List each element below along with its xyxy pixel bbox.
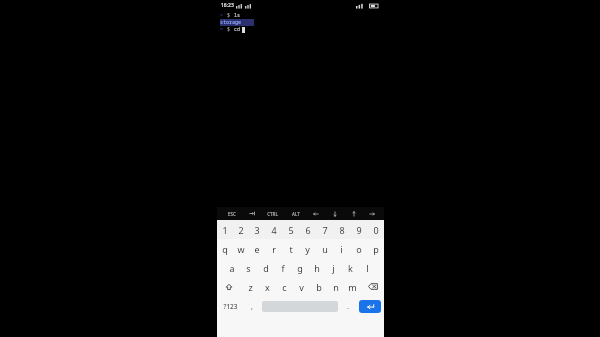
button[interactable]: f — [274, 258, 291, 277]
button[interactable]: Arrow right — [365, 207, 378, 220]
staticText: 5 — [288, 224, 294, 236]
staticText: i — [340, 243, 343, 255]
button[interactable]: CTRL — [264, 207, 281, 220]
button[interactable]: c — [276, 277, 293, 296]
button[interactable]: 3 — [249, 220, 265, 239]
staticText: ~ — [220, 26, 224, 33]
button[interactable]: . — [340, 296, 356, 317]
staticText: z — [248, 281, 253, 293]
staticText: 0 — [373, 224, 379, 236]
button[interactable]: 6 — [299, 220, 316, 239]
button[interactable]: 7 — [316, 220, 333, 239]
staticText: s — [246, 262, 251, 274]
staticText: ESC — [228, 211, 236, 217]
button[interactable]: n — [327, 277, 344, 296]
staticText: v — [299, 281, 304, 293]
staticText: e — [254, 243, 260, 255]
staticText: 1 — [222, 224, 228, 236]
staticText: l — [366, 262, 369, 274]
staticText: x — [265, 281, 270, 293]
staticText: 8 — [339, 224, 345, 236]
button[interactable]: Arrow left — [309, 207, 322, 220]
staticText: d — [263, 262, 269, 274]
button[interactable]: Backspace — [361, 277, 384, 296]
staticText: h — [314, 262, 320, 274]
staticText: 4 — [271, 224, 277, 236]
button[interactable]: b — [310, 277, 327, 296]
button[interactable]: r — [265, 239, 282, 258]
staticText: k — [348, 262, 353, 274]
staticText: 2 — [238, 224, 244, 236]
staticText: g — [297, 262, 303, 274]
button[interactable]: k — [342, 258, 359, 277]
button[interactable]: s — [240, 258, 257, 277]
staticText: n — [333, 281, 339, 293]
staticText: ?123 — [223, 302, 238, 311]
button[interactable]: z — [241, 277, 259, 296]
staticText: u — [322, 243, 328, 255]
button[interactable]: d — [257, 258, 274, 277]
button[interactable]: 5 — [282, 220, 299, 239]
staticText: , — [251, 302, 253, 312]
button[interactable]: ESC — [223, 207, 240, 220]
button[interactable]: ?123 — [217, 296, 244, 317]
button[interactable]: h — [308, 258, 325, 277]
button[interactable]: Shift — [217, 277, 241, 296]
button[interactable]: 2 — [233, 220, 249, 239]
staticText: a — [229, 262, 235, 274]
staticText: 16:23 — [221, 2, 234, 9]
staticText: w — [237, 243, 245, 255]
staticText: q — [222, 243, 228, 255]
staticText: CTRL — [267, 211, 278, 217]
button[interactable]: i — [333, 239, 350, 258]
button[interactable]: 9 — [350, 220, 367, 239]
staticText: j — [332, 262, 335, 274]
button[interactable]: e — [249, 239, 265, 258]
staticText: t — [289, 243, 293, 255]
button[interactable]: p — [367, 239, 384, 258]
button[interactable]: ~ — [217, 11, 384, 207]
button[interactable]: Arrow down — [328, 207, 341, 220]
button[interactable]: , — [244, 296, 260, 317]
button[interactable]: l — [359, 258, 376, 277]
button[interactable]: Arrow up — [347, 207, 360, 220]
staticText: o — [356, 243, 362, 255]
button[interactable]: t — [282, 239, 299, 258]
staticText: 3 — [254, 224, 260, 236]
staticText: 7 — [322, 224, 328, 236]
staticText: ~ — [220, 12, 224, 19]
staticText: $ — [224, 12, 234, 19]
staticText: $ — [224, 26, 234, 33]
staticText: ALT — [292, 211, 300, 217]
button[interactable]: 8 — [333, 220, 350, 239]
button[interactable]: j — [325, 258, 342, 277]
staticText: f — [281, 262, 285, 274]
button[interactable]: m — [344, 277, 361, 296]
staticText: b — [316, 281, 322, 293]
staticText: m — [348, 281, 357, 293]
staticText: . — [347, 302, 349, 312]
button[interactable]: u — [316, 239, 333, 258]
button[interactable]: x — [259, 277, 276, 296]
button[interactable]: 1 — [217, 220, 233, 239]
button[interactable]: Enter — [359, 300, 381, 313]
button[interactable]: y — [299, 239, 316, 258]
button[interactable]: q — [217, 239, 233, 258]
staticText: storage — [220, 19, 242, 26]
button[interactable]: 4 — [265, 220, 282, 239]
button[interactable]: a — [224, 258, 240, 277]
button[interactable]: o — [350, 239, 367, 258]
staticText: 9 — [356, 224, 362, 236]
staticText: c — [282, 281, 287, 293]
button[interactable]: ALT — [287, 207, 304, 220]
staticText: ls — [234, 12, 241, 19]
staticText: 6 — [305, 224, 311, 236]
staticText: y — [305, 243, 310, 255]
button[interactable]: w — [233, 239, 249, 258]
staticText: cd — [234, 26, 241, 33]
button[interactable]: v — [293, 277, 310, 296]
button[interactable]: 0 — [367, 220, 384, 239]
button[interactable]: g — [291, 258, 308, 277]
button[interactable]: Tab — [245, 207, 258, 220]
